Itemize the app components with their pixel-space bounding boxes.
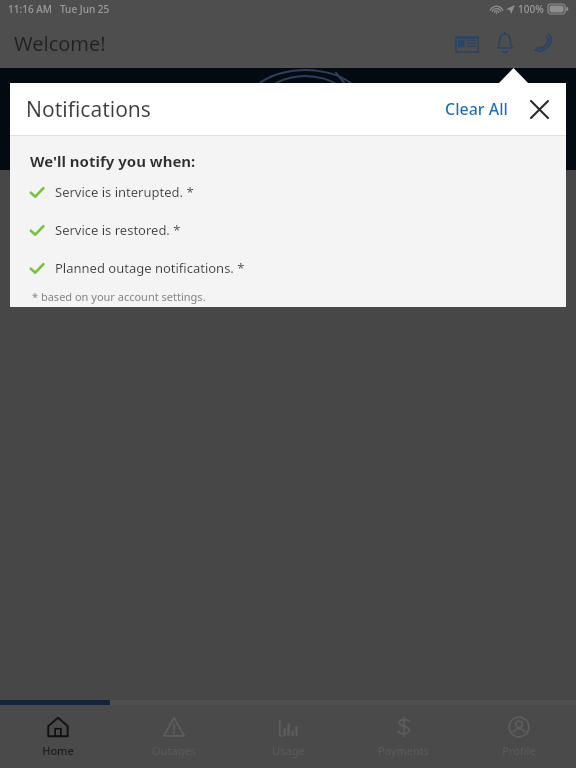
staticText: Home bbox=[42, 743, 74, 758]
button[interactable]: Notifications bbox=[486, 24, 524, 62]
button[interactable]: Add an Account bbox=[28, 241, 548, 278]
staticText: Payments bbox=[378, 743, 429, 758]
button[interactable]: Close bbox=[524, 94, 554, 124]
staticText: 11:16 AM bbox=[8, 2, 52, 16]
staticText: Usage bbox=[272, 743, 305, 758]
staticText: Welcome! bbox=[14, 30, 106, 57]
staticText: 100% bbox=[518, 2, 544, 16]
staticText: * based on your account settings. bbox=[32, 289, 206, 304]
staticText: Receive service notifications. bbox=[52, 208, 227, 226]
staticText: Clear All bbox=[445, 98, 508, 120]
staticText: Planned outage notifications. * bbox=[55, 259, 245, 277]
staticText: Tue Jun 25 bbox=[60, 2, 110, 16]
staticText: Manage your payments. bbox=[52, 176, 201, 194]
button[interactable]: News bbox=[448, 24, 486, 62]
button[interactable]: Call bbox=[524, 24, 562, 62]
staticText: Service is interupted. * bbox=[55, 183, 194, 201]
button[interactable]: Home bbox=[0, 706, 116, 768]
button[interactable]: Clear All bbox=[439, 92, 514, 126]
staticText: We'll notify you when: bbox=[30, 151, 196, 171]
staticText: Add an Account bbox=[236, 250, 340, 269]
staticText: Notifications bbox=[26, 95, 151, 124]
staticText: Outages bbox=[152, 743, 196, 758]
staticText: Profile bbox=[502, 743, 536, 758]
staticText: Service is restored. * bbox=[55, 221, 181, 239]
